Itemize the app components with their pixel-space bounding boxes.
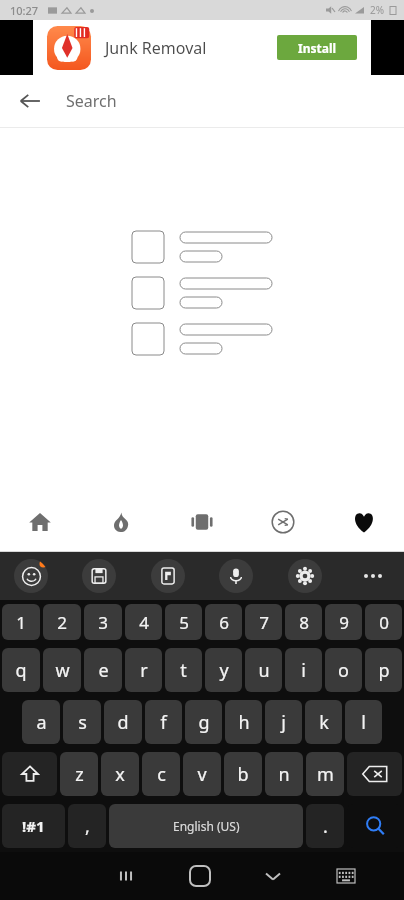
button[interactable]: o <box>325 648 362 692</box>
staticText: e <box>98 658 109 683</box>
button[interactable]: Search <box>347 804 402 848</box>
button[interactable]: x <box>101 752 139 796</box>
button[interactable]: d <box>104 700 142 744</box>
button[interactable]: English (US) <box>109 804 303 848</box>
button[interactable]: Backspace <box>347 752 402 796</box>
button[interactable]: , <box>68 804 106 848</box>
button[interactable]: g <box>185 700 222 744</box>
staticText: d <box>117 710 129 735</box>
button[interactable]: 6 <box>205 604 242 640</box>
staticText: 0 <box>379 611 389 634</box>
button[interactable]: z <box>60 752 98 796</box>
staticText: l <box>361 710 366 735</box>
button[interactable]: Favorites <box>323 493 404 551</box>
button[interactable]: 5 <box>165 604 202 640</box>
staticText: 2% <box>370 3 385 17</box>
button[interactable]: Cards <box>161 493 242 551</box>
button[interactable]: 8 <box>285 604 322 640</box>
button[interactable]: 7 <box>245 604 282 640</box>
button[interactable]: u <box>245 648 282 692</box>
button[interactable]: Search <box>66 90 404 112</box>
button[interactable]: m <box>306 752 344 796</box>
button[interactable]: q <box>2 648 40 692</box>
button[interactable]: 2 <box>43 604 81 640</box>
button[interactable]: s <box>63 700 101 744</box>
staticText: , <box>85 814 90 839</box>
button[interactable]: p <box>365 648 402 692</box>
button[interactable]: n <box>265 752 303 796</box>
staticText: English (US) <box>173 818 240 834</box>
button[interactable]: 1 <box>2 604 40 640</box>
button[interactable]: Shift <box>2 752 57 796</box>
button[interactable]: Home <box>0 493 80 551</box>
staticText: y <box>219 658 229 683</box>
button[interactable]: v <box>183 752 221 796</box>
button[interactable]: j <box>265 700 302 744</box>
staticText: 2 <box>57 611 67 634</box>
staticText: 8 <box>299 611 309 634</box>
button[interactable]: y <box>205 648 242 692</box>
button[interactable]: l <box>345 700 382 744</box>
staticText: 7 <box>259 611 269 634</box>
button[interactable]: 0 <box>365 604 402 640</box>
button[interactable]: Install <box>277 35 357 60</box>
button[interactable]: Voice input <box>219 559 253 593</box>
button[interactable]: e <box>84 648 122 692</box>
button[interactable]: Junk Removal <box>0 20 404 75</box>
button[interactable]: k <box>305 700 342 744</box>
button[interactable]: Clipboard <box>82 559 116 593</box>
staticText: a <box>36 710 47 735</box>
button[interactable]: Home <box>163 852 236 900</box>
staticText: v <box>197 762 207 787</box>
button[interactable]: Hide keyboard <box>236 852 309 900</box>
button[interactable]: Change keyboard <box>309 852 382 900</box>
button[interactable]: c <box>142 752 180 796</box>
button[interactable]: a <box>22 700 60 744</box>
staticText: j <box>281 710 286 735</box>
button[interactable]: h <box>225 700 262 744</box>
staticText: . <box>323 814 328 839</box>
staticText: h <box>238 710 250 735</box>
button[interactable]: r <box>125 648 162 692</box>
staticText: Install <box>298 40 337 56</box>
staticText: 6 <box>219 611 229 634</box>
staticText: m <box>317 762 334 787</box>
staticText: 9 <box>339 611 349 634</box>
button[interactable]: Trending <box>80 493 161 551</box>
staticText: Junk Removal <box>105 37 277 59</box>
button[interactable]: w <box>43 648 81 692</box>
staticText: f <box>160 710 167 735</box>
staticText: t <box>180 658 187 683</box>
staticText: 4 <box>139 611 149 634</box>
button[interactable]: 9 <box>325 604 362 640</box>
staticText: 1 <box>16 611 26 634</box>
button[interactable]: Stickers <box>151 559 185 593</box>
button[interactable]: 4 <box>125 604 162 640</box>
staticText: x <box>115 762 125 787</box>
button[interactable]: f <box>145 700 182 744</box>
button[interactable]: t <box>165 648 202 692</box>
staticText: b <box>237 762 249 787</box>
staticText: q <box>15 658 27 683</box>
button[interactable]: More options <box>356 559 390 593</box>
staticText: k <box>319 710 329 735</box>
button[interactable]: i <box>285 648 322 692</box>
staticText: 5 <box>179 611 189 634</box>
staticText: z <box>75 762 84 787</box>
staticText: w <box>55 658 70 683</box>
button[interactable]: Emoji <box>14 559 48 593</box>
button[interactable]: !#1 <box>2 804 65 848</box>
button[interactable]: 3 <box>84 604 122 640</box>
button[interactable]: Back <box>8 79 52 123</box>
staticText: c <box>157 762 166 787</box>
button[interactable]: Recent apps <box>89 852 163 900</box>
staticText: i <box>301 658 306 683</box>
staticText: n <box>278 762 290 787</box>
button[interactable]: Shuffle <box>242 493 323 551</box>
button[interactable]: Keyboard settings <box>288 559 322 593</box>
staticText: 10:27 <box>10 3 39 18</box>
button[interactable]: . <box>306 804 344 848</box>
button[interactable]: b <box>224 752 262 796</box>
staticText: s <box>78 710 87 735</box>
staticText: !#1 <box>22 816 45 836</box>
